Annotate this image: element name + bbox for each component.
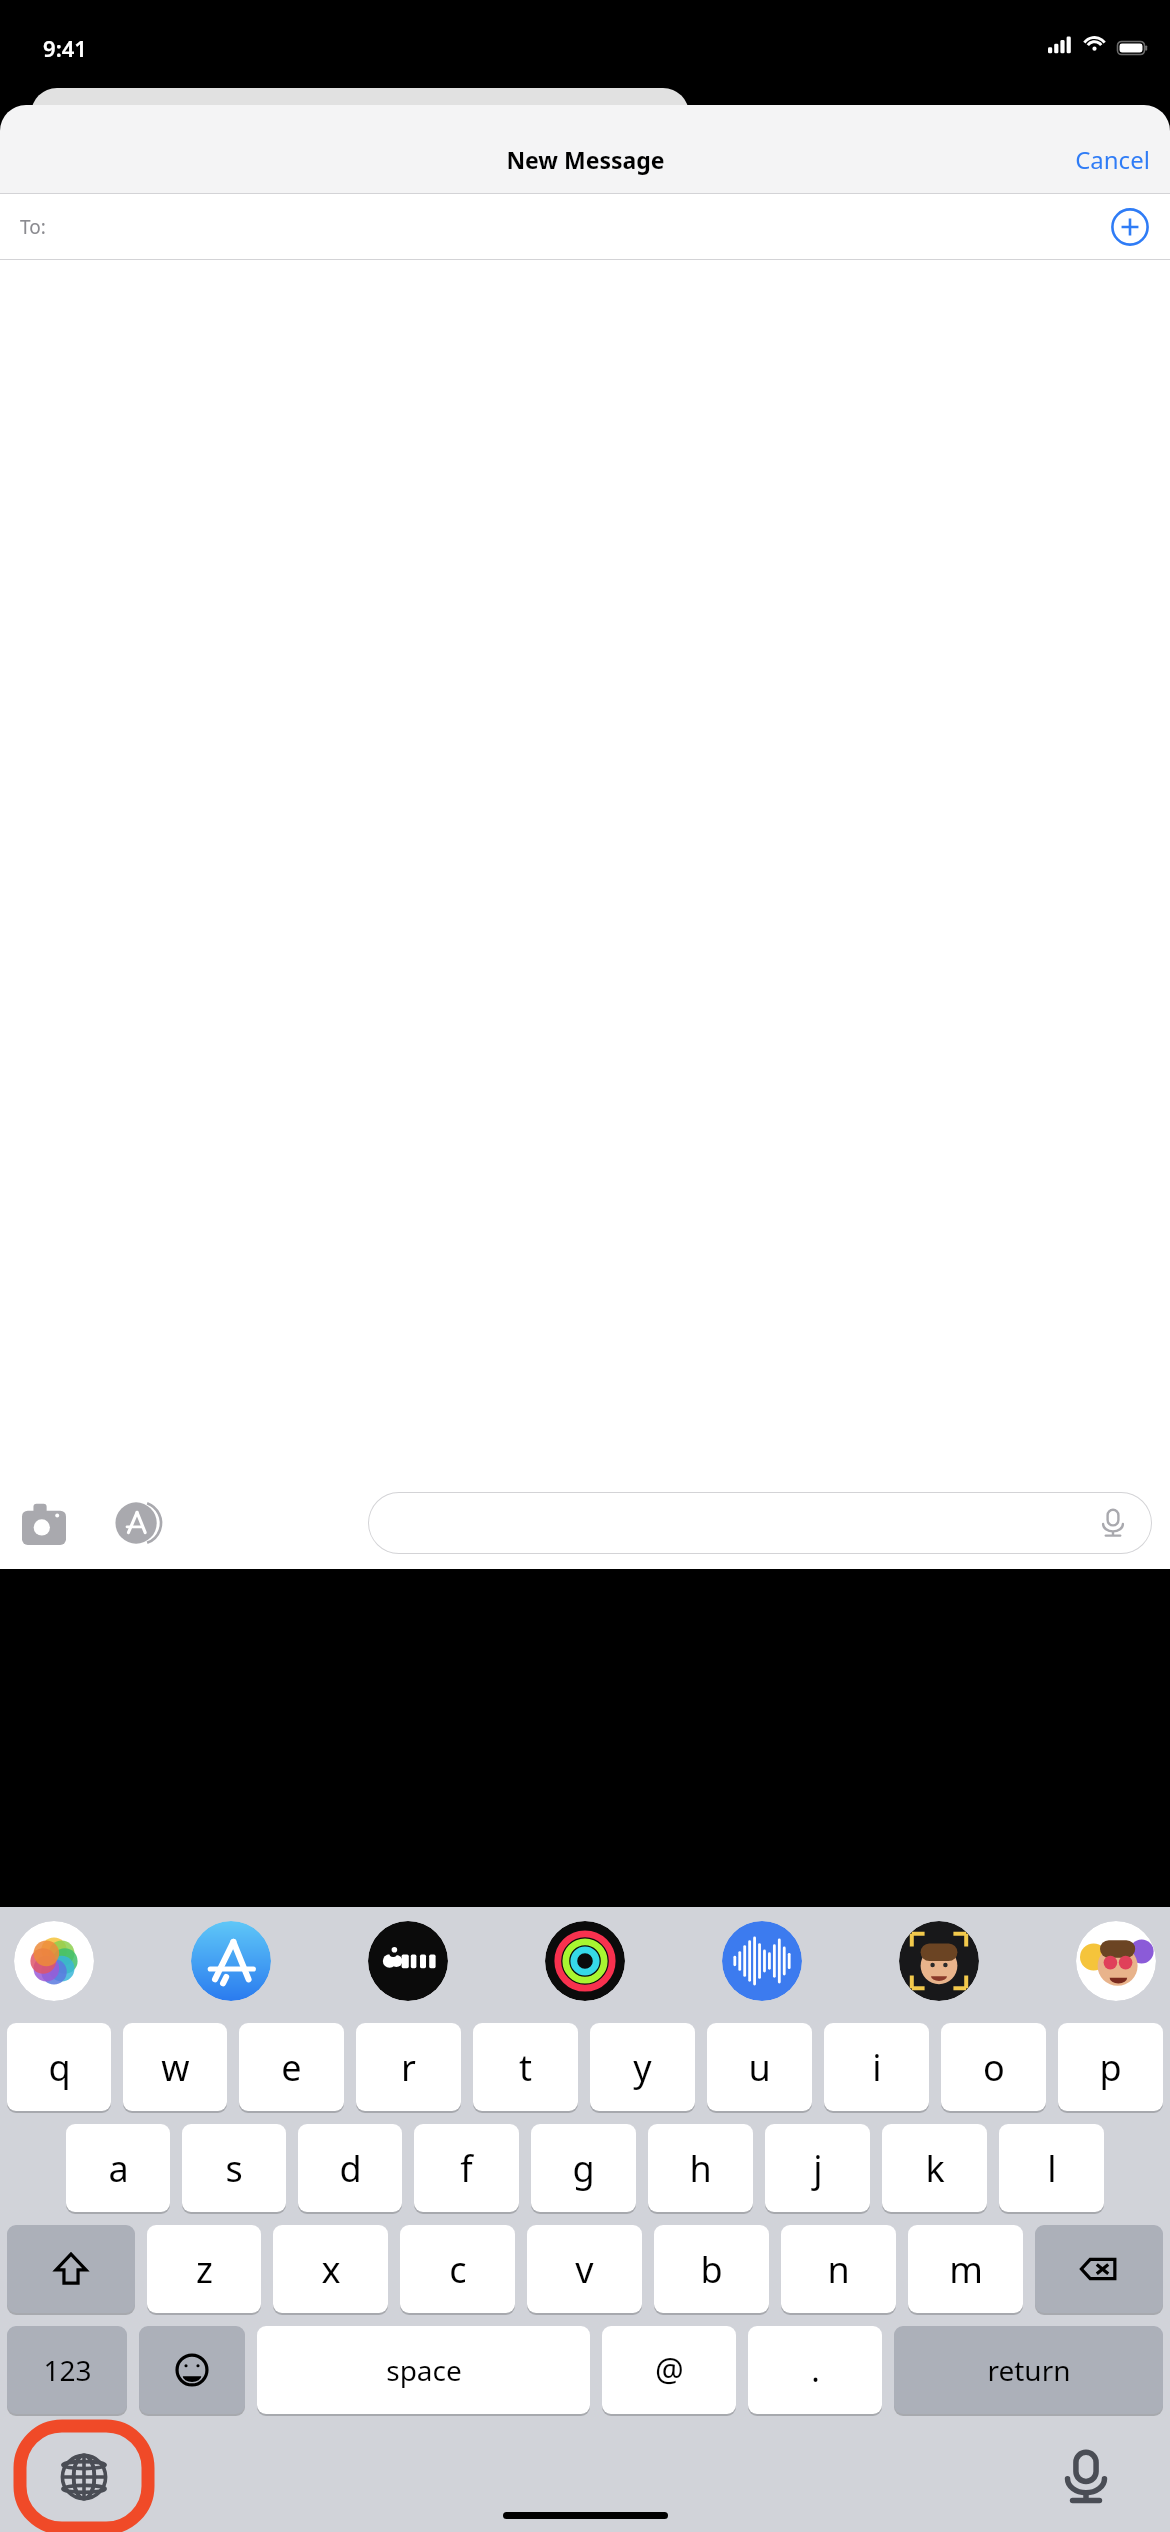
staticText: b: [700, 2245, 723, 2294]
staticText: @: [655, 2348, 684, 2392]
button[interactable]: s: [182, 2124, 286, 2212]
staticText: q: [48, 2043, 71, 2092]
staticText: Cancel: [1075, 143, 1150, 176]
button[interactable]: Shift: [7, 2225, 135, 2313]
staticText: v: [575, 2245, 594, 2294]
button[interactable]: w: [123, 2023, 227, 2111]
button[interactable]: Add contact: [1108, 205, 1152, 249]
button[interactable]: j: [765, 2124, 870, 2212]
button[interactable]: Apple Cash: [368, 1921, 448, 2001]
staticText: i: [872, 2043, 882, 2092]
staticText: New Message: [506, 144, 665, 175]
button[interactable]: k: [882, 2124, 987, 2212]
button[interactable]: b: [654, 2225, 769, 2313]
button[interactable]: 123: [7, 2326, 127, 2414]
button[interactable]: e: [239, 2023, 344, 2111]
staticText: c: [449, 2245, 467, 2294]
staticText: d: [339, 2144, 362, 2193]
button[interactable]: z: [147, 2225, 261, 2313]
staticText: l: [1047, 2144, 1057, 2193]
button[interactable]: Cancel: [1055, 133, 1170, 186]
button[interactable]: m: [908, 2225, 1023, 2313]
button[interactable]: v: [527, 2225, 642, 2313]
staticText: g: [572, 2144, 595, 2193]
button[interactable]: f: [414, 2124, 519, 2212]
staticText: k: [925, 2144, 945, 2193]
button[interactable]: return: [894, 2326, 1163, 2414]
button[interactable]: [368, 1492, 1152, 1554]
button[interactable]: q: [7, 2023, 111, 2111]
staticText: return: [987, 2351, 1071, 2389]
button[interactable]: Memoji: [899, 1921, 979, 2001]
staticText: r: [401, 2043, 416, 2092]
staticText: x: [321, 2245, 341, 2294]
button[interactable]: @: [602, 2326, 736, 2414]
button[interactable]: o: [941, 2023, 1046, 2111]
staticText: 123: [43, 2351, 92, 2389]
staticText: m: [949, 2245, 983, 2294]
staticText: w: [161, 2043, 190, 2092]
button[interactable]: .: [748, 2326, 882, 2414]
button[interactable]: Memoji stickers: [1076, 1921, 1156, 2001]
button[interactable]: Dictation: [1058, 2449, 1114, 2505]
button[interactable]: i: [824, 2023, 929, 2111]
button[interactable]: Emoji: [139, 2326, 245, 2414]
button[interactable]: y: [590, 2023, 695, 2111]
button[interactable]: Voice: [722, 1921, 802, 2001]
staticText: s: [225, 2144, 243, 2193]
staticText: z: [196, 2245, 213, 2294]
button[interactable]: a: [66, 2124, 170, 2212]
staticText: e: [281, 2043, 302, 2092]
button[interactable]: g: [531, 2124, 636, 2212]
button[interactable]: d: [298, 2124, 402, 2212]
button[interactable]: Backspace: [1035, 2225, 1163, 2313]
button[interactable]: p: [1058, 2023, 1163, 2111]
staticText: o: [983, 2043, 1005, 2092]
button[interactable]: Fitness: [545, 1921, 625, 2001]
staticText: To:: [20, 214, 46, 240]
staticText: f: [460, 2144, 473, 2193]
button[interactable]: t: [473, 2023, 578, 2111]
staticText: .: [811, 2348, 820, 2392]
button[interactable]: To:: [0, 194, 1170, 260]
button[interactable]: r: [356, 2023, 461, 2111]
button[interactable]: Photos: [14, 1921, 94, 2001]
staticText: u: [748, 2043, 771, 2092]
button[interactable]: x: [273, 2225, 388, 2313]
staticText: j: [813, 2144, 823, 2193]
button[interactable]: Switch keyboard: [16, 2422, 152, 2532]
staticText: p: [1099, 2043, 1122, 2092]
staticText: space: [386, 2351, 462, 2389]
button[interactable]: Apps: [110, 1495, 166, 1551]
staticText: a: [108, 2144, 129, 2193]
staticText: y: [633, 2043, 652, 2092]
button[interactable]: Camera: [16, 1495, 72, 1551]
staticText: 9:41: [43, 33, 87, 63]
staticText: n: [827, 2245, 850, 2294]
button[interactable]: u: [707, 2023, 812, 2111]
button[interactable]: l: [999, 2124, 1104, 2212]
button[interactable]: h: [648, 2124, 753, 2212]
button[interactable]: c: [400, 2225, 515, 2313]
button[interactable]: App Store: [191, 1921, 271, 2001]
button[interactable]: space: [257, 2326, 590, 2414]
staticText: h: [689, 2144, 712, 2193]
button[interactable]: n: [781, 2225, 896, 2313]
staticText: t: [519, 2043, 532, 2092]
